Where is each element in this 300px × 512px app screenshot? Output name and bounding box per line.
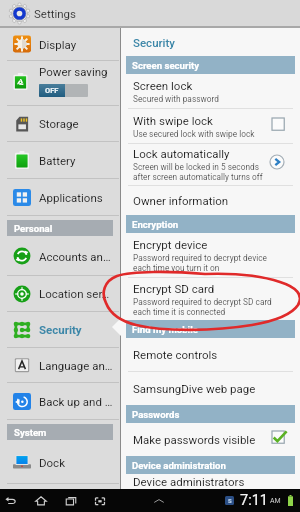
button[interactable]: Lock automatically [121, 144, 300, 185]
staticText: each time you turn it on [133, 263, 220, 273]
staticText: Display [39, 38, 77, 51]
staticText: Device administrators [133, 475, 245, 488]
button[interactable]: Screenshot [93, 494, 107, 508]
staticText: Screen security [132, 60, 200, 71]
staticText: Use secured lock with swipe lock [133, 129, 255, 139]
button[interactable]: Battery [0, 142, 120, 178]
staticText: Secured with password [133, 94, 219, 104]
staticText: Storage [39, 117, 79, 130]
staticText: Owner information [133, 194, 229, 207]
staticText: Make passwords visible [133, 433, 256, 446]
staticText: Accounts an… [39, 250, 111, 263]
staticText: Device administration [132, 460, 226, 471]
staticText: AM [270, 497, 281, 505]
staticText: Encrypt SD card [133, 282, 215, 295]
staticText: Encryption [132, 219, 179, 230]
staticText: each time it is connected [133, 307, 226, 317]
button[interactable]: Applications [0, 179, 120, 215]
staticText: Settings [34, 7, 76, 20]
button[interactable]: Device administrators [121, 474, 300, 489]
staticText: Encrypt device [133, 238, 208, 251]
button[interactable]: Home [34, 494, 48, 508]
staticText: Applications [39, 191, 103, 204]
staticText: Location ser… [39, 287, 110, 300]
button[interactable]: Back [4, 494, 18, 508]
staticText: Password required to decrypt SD card [133, 297, 272, 307]
button[interactable]: Encrypt SD card [121, 278, 300, 320]
button[interactable]: Recent apps [64, 494, 78, 508]
staticText: after screen automatically turns off [133, 172, 263, 182]
staticText: With swipe lock [133, 114, 213, 127]
staticText: OFF [45, 86, 59, 95]
button[interactable]: Display [0, 28, 120, 60]
staticText: Dock [39, 456, 65, 469]
staticText: Remote controls [133, 348, 218, 361]
button[interactable]: Owner information [121, 186, 300, 215]
button[interactable]: Encrypt device [121, 233, 300, 277]
button[interactable]: Back up and … [0, 383, 120, 419]
button[interactable]: Screen lock [121, 74, 300, 108]
button[interactable]: Security [0, 312, 120, 347]
staticText: Screen will be locked in 5 seconds [133, 162, 259, 172]
staticText: Find my mobile [132, 324, 198, 335]
button[interactable]: Power saving [0, 61, 120, 105]
staticText: System [14, 427, 47, 438]
button[interactable]: With swipe lock [121, 109, 300, 143]
staticText: Language an… [39, 359, 113, 372]
staticText: Password required to decrypt device [133, 253, 267, 263]
button[interactable]: Show notifications [152, 494, 166, 508]
button[interactable]: Accounts an… [0, 237, 120, 275]
staticText: SamsungDive web page [133, 382, 256, 395]
staticText: Screen lock [133, 79, 193, 92]
staticText: Security [39, 323, 82, 336]
staticText: Personal [14, 223, 53, 234]
staticText: Battery [39, 154, 76, 167]
staticText: Security [133, 36, 175, 49]
staticText: 7:11 [240, 492, 268, 509]
staticText: S [228, 497, 232, 504]
button[interactable]: Make passwords visible [121, 423, 300, 456]
button[interactable]: SamsungDive web page [121, 372, 300, 405]
button[interactable]: Location ser… [0, 276, 120, 311]
button[interactable]: Storage [0, 106, 120, 141]
button[interactable]: Status bar [225, 492, 300, 509]
button[interactable]: Dock [0, 441, 120, 483]
button[interactable]: Remote controls [121, 338, 300, 371]
button[interactable]: Language an… [0, 348, 120, 382]
staticText: Back up and … [39, 395, 113, 408]
staticText: Passwords [132, 409, 180, 420]
staticText: Lock automatically [133, 147, 230, 160]
staticText: Power saving [39, 65, 108, 78]
